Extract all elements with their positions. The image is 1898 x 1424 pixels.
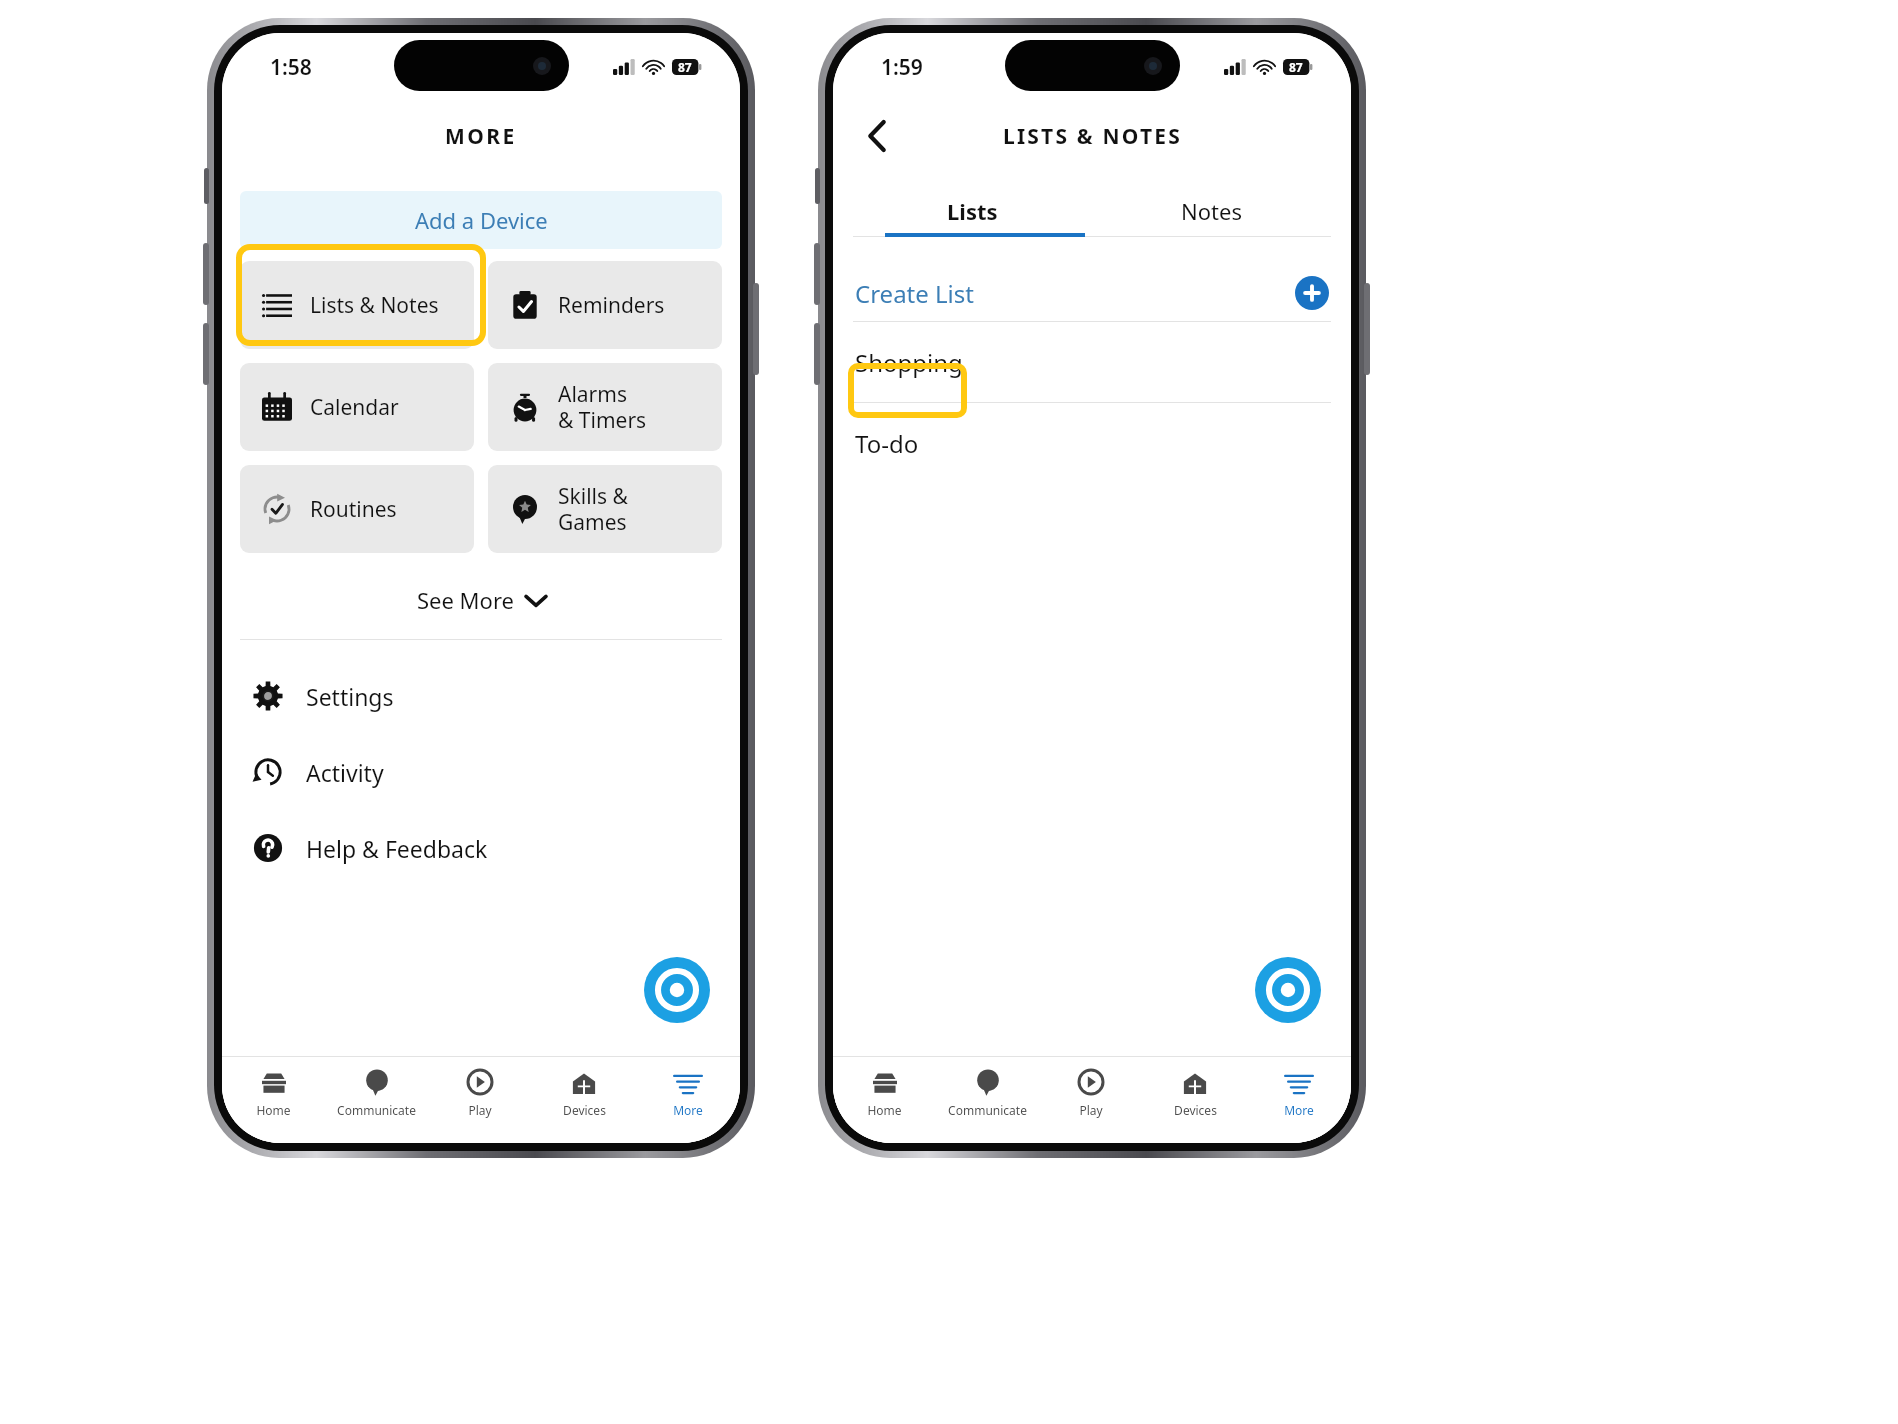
button[interactable]: To-do	[833, 403, 1351, 483]
button[interactable]: Home	[833, 1057, 936, 1143]
button[interactable]: Lists	[853, 185, 1092, 237]
button[interactable]: Add a Device	[240, 191, 722, 249]
staticText: To-do	[855, 427, 919, 460]
button[interactable]: Notes	[1092, 185, 1331, 237]
staticText: 1:58	[270, 53, 312, 82]
button[interactable]: Alexa	[1255, 957, 1321, 1023]
button[interactable]: Create List	[833, 265, 1351, 321]
button[interactable]: Devices	[1143, 1057, 1247, 1143]
staticText: Lists & Notes	[310, 291, 439, 320]
button[interactable]: Home	[222, 1057, 325, 1143]
staticText: Activity	[306, 757, 384, 788]
staticText: Play	[468, 1102, 492, 1118]
staticText: Skills & Games	[558, 482, 628, 536]
button[interactable]: More	[1247, 1057, 1351, 1143]
staticText: Devices	[563, 1102, 606, 1118]
button[interactable]: Alexa	[644, 957, 710, 1023]
staticText: Routines	[310, 495, 397, 524]
button[interactable]: Devices	[532, 1057, 636, 1143]
staticText: 87	[1289, 59, 1303, 75]
button[interactable]: Lists & Notes	[240, 261, 474, 349]
button[interactable]: Play	[1039, 1057, 1143, 1143]
button[interactable]: Settings	[222, 674, 740, 718]
staticText: Add a Device	[415, 205, 548, 235]
staticText: 1:59	[881, 53, 923, 82]
button[interactable]: Activity	[222, 750, 740, 794]
staticText: LISTS & NOTES	[1003, 122, 1182, 151]
staticText: Settings	[306, 681, 394, 712]
staticText: Reminders	[558, 291, 665, 320]
button[interactable]: Reminders	[488, 261, 722, 349]
staticText: More	[1284, 1102, 1314, 1118]
button[interactable]: Calendar	[240, 363, 474, 451]
staticText: Home	[256, 1102, 291, 1118]
button[interactable]: Communicate	[936, 1057, 1039, 1143]
staticText: 87	[678, 59, 692, 75]
button[interactable]: See More	[222, 577, 740, 623]
button[interactable]: Alarms & Timers	[488, 363, 722, 451]
staticText: Play	[1079, 1102, 1103, 1118]
button[interactable]: Routines	[240, 465, 474, 553]
staticText: Lists	[947, 196, 998, 226]
staticText: Communicate	[948, 1102, 1027, 1118]
button[interactable]: More	[636, 1057, 740, 1143]
staticText: Alarms & Timers	[558, 380, 647, 434]
staticText: Shopping	[855, 346, 963, 379]
staticText: Calendar	[310, 393, 399, 422]
button[interactable]: Shopping	[833, 322, 1351, 402]
staticText: Devices	[1174, 1102, 1217, 1118]
staticText: Notes	[1181, 196, 1242, 226]
button[interactable]: Communicate	[325, 1057, 428, 1143]
button[interactable]: Skills & Games	[488, 465, 722, 553]
staticText: Create List	[855, 277, 974, 310]
button[interactable]: Back	[855, 114, 899, 158]
staticText: More	[673, 1102, 703, 1118]
staticText: Help & Feedback	[306, 833, 488, 864]
staticText: MORE	[445, 122, 517, 151]
staticText: Communicate	[337, 1102, 416, 1118]
staticText: Home	[867, 1102, 902, 1118]
button[interactable]: Play	[428, 1057, 532, 1143]
staticText: See More	[417, 585, 514, 615]
button[interactable]: Help & Feedback	[222, 826, 740, 870]
